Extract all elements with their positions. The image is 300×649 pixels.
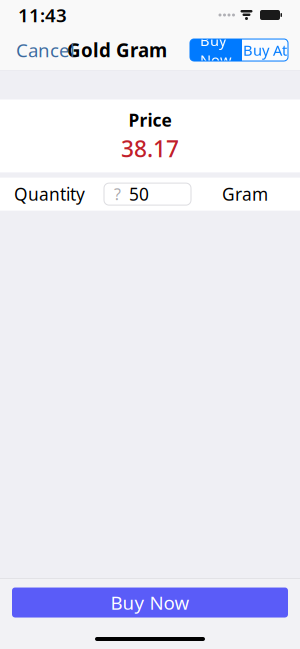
staticText: ? xyxy=(114,183,121,205)
staticText: Buy Now xyxy=(200,30,232,69)
staticText: 38.17 xyxy=(121,133,179,164)
staticText: Gold Gram xyxy=(67,38,167,62)
staticText: Price xyxy=(128,108,171,131)
button[interactable]: Cancel xyxy=(4,30,87,70)
button[interactable]: ? xyxy=(104,183,191,205)
button[interactable]: Buy Now xyxy=(12,587,288,617)
staticText: 11:43 xyxy=(18,3,67,27)
staticText: Buy At xyxy=(243,40,287,60)
staticText: Gram xyxy=(222,183,268,206)
staticText: Quantity xyxy=(14,183,85,206)
button[interactable]: Buy Now xyxy=(190,39,242,61)
button[interactable]: Buy At xyxy=(242,39,288,61)
staticText: Cancel xyxy=(16,38,75,62)
staticText: 50 xyxy=(129,183,149,206)
staticText: Buy Now xyxy=(110,590,189,615)
